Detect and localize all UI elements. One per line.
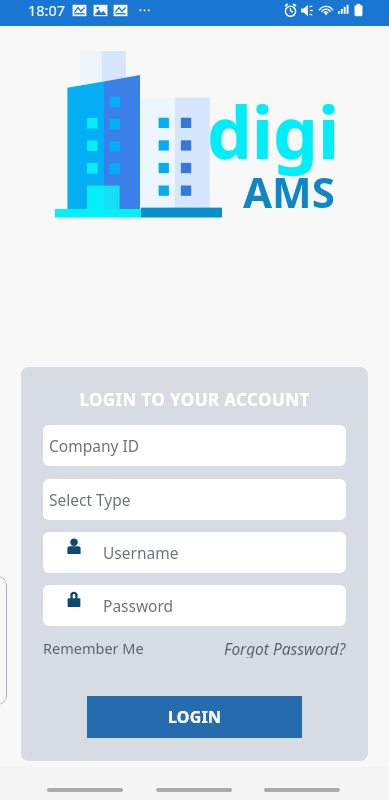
button[interactable]: Remember Me [43,638,144,658]
staticText: Username [103,542,179,563]
staticText: Password [103,595,174,616]
staticText: Company ID [49,435,139,456]
staticText: AMS [243,163,335,220]
staticText: digi [207,83,340,180]
staticText: LOGIN TO YOUR ACCOUNT [43,388,346,411]
staticText: 18:07 [28,0,66,20]
button[interactable]: Select Type [43,479,346,520]
button[interactable]: Back [264,780,340,800]
button[interactable]: Home [156,780,232,800]
button[interactable]: Recents [47,780,123,800]
button[interactable]: Forgot Password? [224,638,346,658]
button[interactable]: Username [43,532,346,573]
button[interactable]: Password [43,585,346,626]
button[interactable]: LOGIN [87,696,302,738]
button[interactable]: Company ID [43,425,346,466]
staticText: Select Type [49,489,131,510]
staticText: LOGIN [168,706,222,728]
